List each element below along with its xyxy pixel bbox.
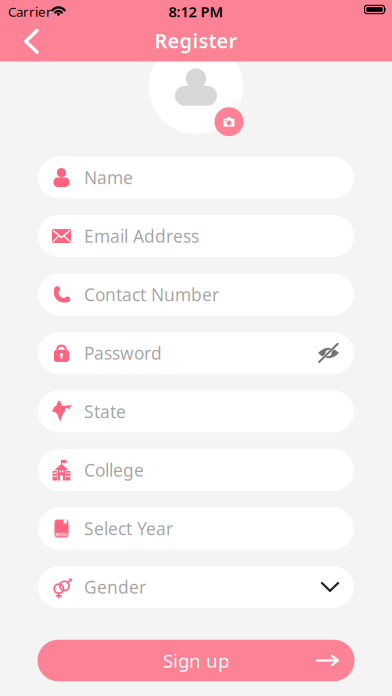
- staticText: 8:12 PM: [168, 2, 223, 21]
- staticText: Register: [154, 27, 237, 54]
- staticText: College: [84, 458, 144, 481]
- button[interactable]: Add photo: [214, 107, 243, 136]
- button[interactable]: Back: [24, 29, 39, 54]
- button[interactable]: Sign up: [37, 640, 354, 681]
- staticText: Gender: [84, 575, 146, 598]
- button[interactable]: Email Address: [38, 215, 354, 257]
- staticText: Email Address: [84, 224, 199, 247]
- staticText: Carrier: [8, 3, 52, 20]
- staticText: Name: [84, 166, 133, 189]
- button[interactable]: College: [38, 449, 354, 491]
- staticText: Sign up: [163, 648, 229, 673]
- staticText: Contact Number: [84, 283, 219, 306]
- button[interactable]: Password: [38, 332, 354, 374]
- button[interactable]: Gender: [38, 566, 354, 608]
- button[interactable]: State: [38, 390, 354, 432]
- button[interactable]: Show password: [317, 346, 339, 360]
- button[interactable]: Name: [38, 156, 354, 198]
- staticText: State: [84, 400, 126, 423]
- button[interactable]: Contact Number: [38, 273, 354, 315]
- button[interactable]: Select Year: [38, 507, 354, 549]
- staticText: Password: [84, 341, 162, 364]
- staticText: Select Year: [84, 517, 173, 540]
